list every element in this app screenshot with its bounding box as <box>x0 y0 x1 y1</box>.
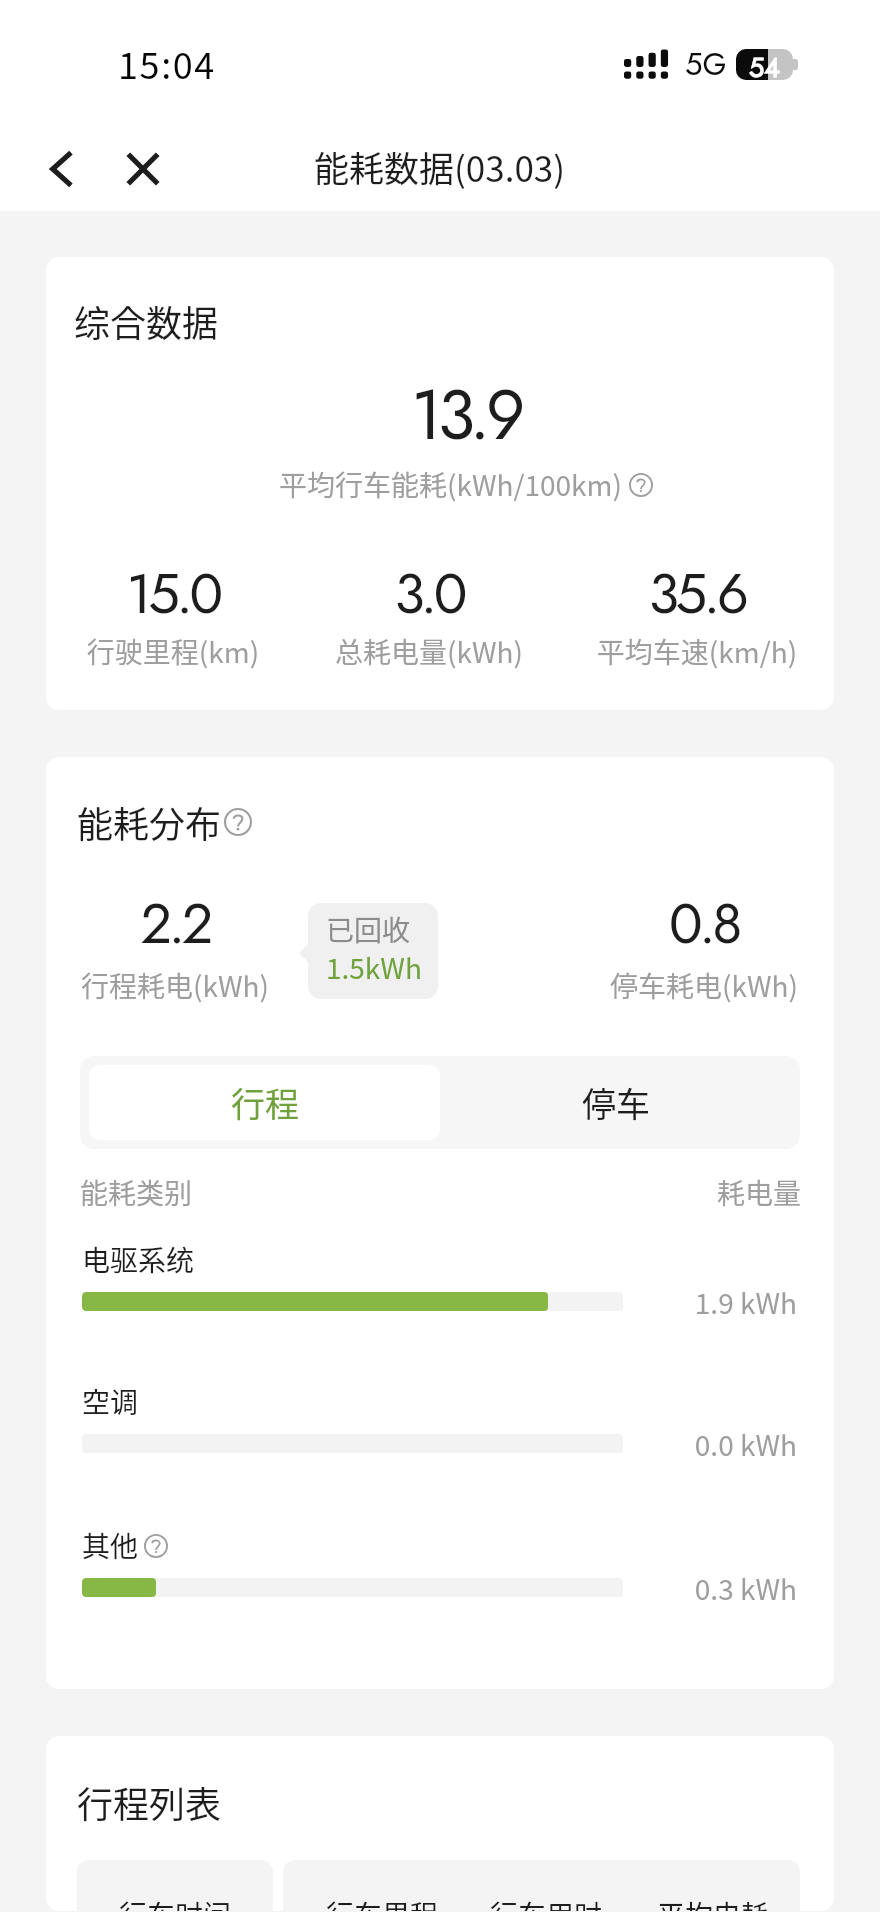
staticText: 3.0 <box>279 553 579 634</box>
staticText: 15:04 <box>118 37 216 89</box>
staticText: 能耗数据(03.03) <box>314 141 566 192</box>
staticText: 5G <box>685 42 727 87</box>
staticText: 35.6 <box>547 553 834 634</box>
staticText: 1.9 kWh <box>597 1282 797 1323</box>
button[interactable]: Back <box>30 137 94 201</box>
button[interactable]: 行车里程 <box>302 1894 462 1911</box>
button[interactable]: 行程 <box>89 1065 440 1140</box>
staticText: 行程列表 <box>77 1776 222 1828</box>
staticText: 0.8 <box>554 883 834 964</box>
staticText: 总耗电量(kWh) <box>279 631 579 672</box>
staticText: 行车时间 <box>119 1894 232 1911</box>
staticText: 平均车速(km/h) <box>547 631 834 672</box>
staticText: 综合数据 <box>74 295 219 347</box>
staticText: 平均行车能耗(kWh/100km) <box>279 464 622 505</box>
staticText: 耗电量 <box>536 1172 801 1213</box>
staticText: 2.2 <box>46 883 325 964</box>
staticText: 电驱系统 <box>82 1239 195 1280</box>
staticText: 停车耗电(kWh) <box>554 965 834 1006</box>
staticText: 0.3 kWh <box>597 1568 797 1609</box>
staticText: 行程耗电(kWh) <box>46 965 325 1006</box>
staticText: 0.0 kWh <box>597 1424 797 1465</box>
staticText: 54 <box>749 48 780 79</box>
staticText: 行程 <box>231 1078 299 1127</box>
button[interactable]: 平均电耗 <box>633 1894 793 1911</box>
staticText: 停车 <box>582 1078 650 1127</box>
staticText: 能耗类别 <box>80 1172 193 1213</box>
staticText: 空调 <box>82 1381 139 1422</box>
button[interactable]: 行车时间 <box>77 1860 273 1911</box>
staticText: 行驶里程(km) <box>46 631 323 672</box>
staticText: 15.0 <box>46 553 323 634</box>
staticText: 已回收 <box>326 909 411 950</box>
button[interactable]: Close <box>111 137 175 201</box>
button[interactable]: 停车 <box>440 1065 791 1140</box>
staticText: 1.5kWh <box>326 947 422 988</box>
staticText: 13.9 <box>116 365 816 465</box>
staticText: 其他 <box>82 1525 139 1566</box>
staticText: 能耗分布 <box>77 796 222 848</box>
button[interactable]: 行车用时 <box>466 1894 626 1911</box>
